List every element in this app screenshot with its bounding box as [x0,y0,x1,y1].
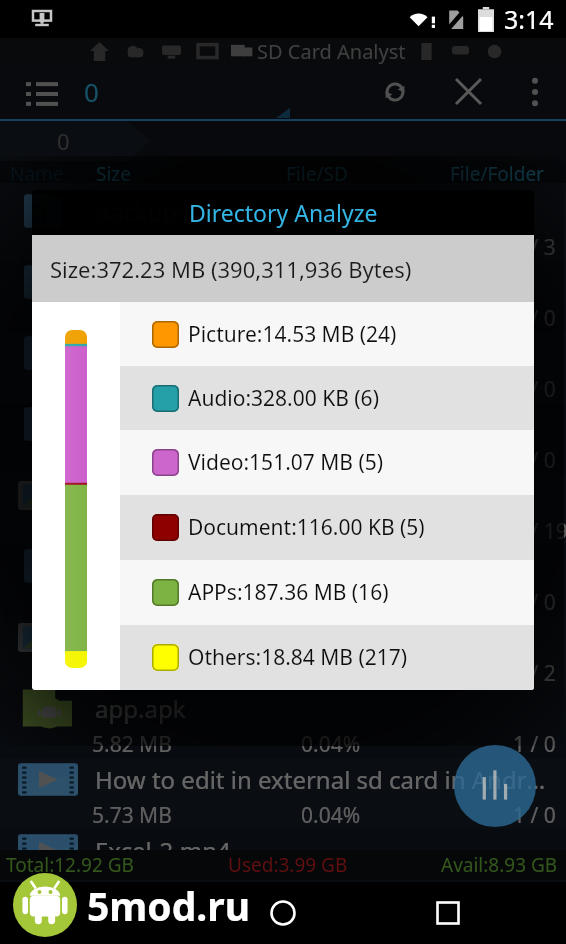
staticText: Video:151.07 MB (5) [188,448,384,477]
staticText: Used:3.99 GB [228,852,348,878]
staticText: 0 [84,74,99,109]
staticText: 1 / 0 [513,801,556,829]
staticText: 42.00 MB [92,659,184,687]
staticText: 1.39% [301,517,361,545]
button[interactable]: Others:18.84 MB (217) [120,625,534,690]
staticText: Music [95,550,161,583]
staticText: File/Folder [450,161,544,183]
staticText: Total:12.92 GB [6,852,134,878]
button[interactable]: Movies [0,403,566,474]
button[interactable]: Download [0,616,566,687]
button[interactable]: Document:116.00 KB (5) [120,495,534,560]
staticText: 2 / 0 [513,304,556,332]
button[interactable]: Audio:328.00 KB (6) [120,366,534,430]
staticText: Movies [95,408,175,441]
staticText: Download [95,621,210,654]
button[interactable]: Close [432,64,504,119]
button[interactable]: Recents [420,885,476,941]
staticText: Picture:14.53 MB (24) [188,320,397,349]
staticText: 500.20 MB [92,375,196,403]
button[interactable]: Music [0,545,566,616]
staticText: SD Card Analyst [257,38,406,64]
staticText: 320.00 MB [92,446,196,474]
button[interactable]: How to edit in external sd card in Andro… [0,758,566,829]
staticText: 0.70% [301,588,361,616]
button[interactable]: Pictures [0,474,566,545]
staticText: Size:372.23 MB (390,311,936 Bytes) [50,254,412,284]
button[interactable]: More options [504,64,566,119]
staticText: 1 / 0 [513,588,556,616]
staticText: 3:14 [504,2,554,36]
staticText: 0.04% [301,801,361,829]
staticText: Others:18.84 MB (217) [188,643,408,672]
staticText: app.apk [95,692,186,725]
button[interactable]: Android [0,261,566,332]
staticText: 600.92 MB [92,304,196,332]
staticText: Pictures [95,479,186,512]
staticText: 0 [57,126,70,156]
button[interactable]: Analyze storage [454,745,536,827]
staticText: 0.04% [301,730,361,758]
staticText: 1 / 0 [513,375,556,403]
staticText: 2.48% [301,446,361,474]
staticText: 1 / 3 [513,233,556,261]
button[interactable]: Menu [0,64,84,119]
staticText: 3.87% [301,375,361,403]
button[interactable]: Refresh [358,64,432,119]
button[interactable]: APPs:187.36 MB (16) [120,560,534,625]
staticText: 180.00 MB [92,517,196,545]
staticText: 1.50 GB [92,233,169,261]
staticText: 11.64% [301,233,373,261]
staticText: 5.82 MB [92,730,172,758]
staticText: 1 / 0 [513,730,556,758]
button[interactable]: backups [0,190,566,261]
staticText: Size [96,161,131,183]
staticText: Directory Analyze [189,197,378,228]
button[interactable]: Back [90,885,146,941]
staticText: 5.73 MB [92,801,172,829]
staticText: Avail:8.93 GB [441,852,558,878]
button[interactable]: Picture:14.53 MB (24) [120,302,534,366]
staticText: File/SD [286,161,348,183]
staticText: 4.65% [301,304,361,332]
button[interactable]: Video:151.07 MB (5) [120,430,534,495]
staticText: 2 / 19 [513,517,566,545]
staticText: 5mod.ru [87,879,251,932]
staticText: Excel-2.mp4 [95,834,231,850]
staticText: 90.00 MB [92,588,184,616]
button[interactable]: app.apk [0,687,566,758]
button[interactable]: DCIM [0,332,566,403]
button[interactable]: Home [255,885,311,941]
staticText: 3 / 0 [513,446,556,474]
staticText: Audio:328.00 KB (6) [188,384,379,413]
staticText: Android [95,266,185,299]
staticText: APPs:187.36 MB (16) [188,578,389,607]
button[interactable]: Excel-2.mp4 [0,829,566,850]
staticText: Name [10,161,64,183]
staticText: DCIM [95,337,158,370]
staticText: 0.33% [301,659,361,687]
staticText: Document:116.00 KB (5) [188,513,425,542]
staticText: 5 / 2 [513,659,556,687]
staticText: How to edit in external sd card in Andro… [95,763,554,796]
